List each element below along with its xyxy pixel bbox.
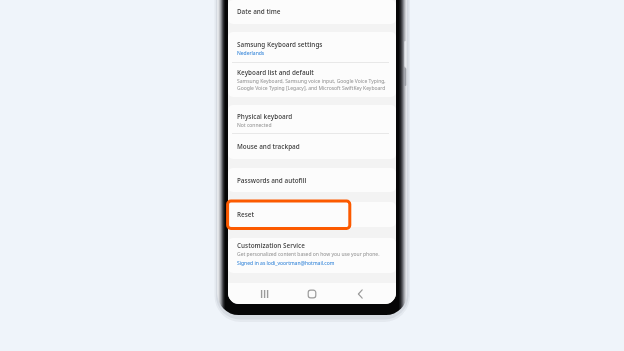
button[interactable]: Back [336,283,384,304]
staticText: Date and time [237,7,281,16]
button[interactable]: Date and time [228,0,396,24]
button[interactable]: Recent apps [240,283,288,304]
staticText: Reset [237,210,255,219]
button[interactable]: Reset [228,202,396,227]
button[interactable]: Mouse and trackpad [228,134,396,159]
staticText: Nederlands [237,50,265,57]
staticText: Physical keyboard [237,112,293,121]
staticText: Get personalized content based on how yo… [237,251,380,258]
button[interactable]: Home [288,283,336,304]
staticText: Not connected [237,122,272,129]
staticText: Passwords and autofill [237,176,307,185]
button[interactable]: Physical keyboard [228,105,396,133]
button[interactable]: Passwords and autofill [228,168,396,192]
button[interactable]: Keyboard list and default [228,63,396,97]
staticText: Keyboard list and default [237,68,314,77]
button[interactable]: Samsung Keyboard settings [228,32,396,62]
staticText: Customization Service [237,241,305,250]
staticText: Mouse and trackpad [237,142,300,151]
button[interactable]: Customization Service [228,238,396,273]
staticText: Signed in as lodi_voortman@hotmail.com [237,260,335,267]
staticText: Samsung Keyboard settings [237,40,323,49]
staticText: Samsung Keyboard, Samsung voice input, G… [237,78,391,91]
